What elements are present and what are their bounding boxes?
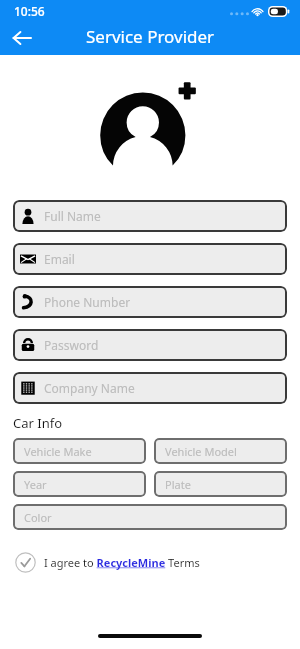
button[interactable]: Back — [8, 24, 36, 52]
staticText: Email — [44, 251, 75, 267]
button[interactable]: Color — [13, 504, 287, 530]
staticText: Full Name — [44, 208, 101, 224]
button[interactable]: Password — [13, 329, 287, 361]
staticText: Year — [24, 477, 47, 492]
staticText: Password — [44, 337, 99, 353]
button[interactable]: Full Name — [13, 200, 287, 232]
staticText: Plate — [165, 477, 191, 492]
staticText: Vehicle Make — [24, 444, 92, 459]
button[interactable]: Vehicle Model — [154, 438, 287, 464]
staticText: 10:56 — [14, 3, 45, 19]
staticText: I agree to RecycleMine Terms — [44, 555, 200, 570]
button[interactable]: Year — [13, 471, 146, 497]
staticText: Service Provider — [86, 25, 215, 48]
staticText: Vehicle Model — [165, 444, 237, 459]
button[interactable]: I agree to RecycleMine Terms — [15, 552, 300, 573]
button[interactable]: Phone Number — [13, 286, 287, 318]
button[interactable]: Add profile photo — [90, 68, 210, 188]
staticText: Company Name — [44, 380, 135, 396]
staticText: Color — [24, 510, 52, 525]
staticText: Phone Number — [44, 294, 131, 310]
button[interactable]: Vehicle Make — [13, 438, 146, 464]
button[interactable]: Plate — [154, 471, 287, 497]
staticText: Car Info — [13, 414, 63, 432]
button[interactable]: Company Name — [13, 372, 287, 404]
button[interactable]: Email — [13, 243, 287, 275]
